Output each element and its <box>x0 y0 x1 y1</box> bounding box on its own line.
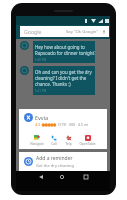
button[interactable]: Call <box>50 135 58 146</box>
staticText: $$$ <box>69 122 76 127</box>
other: Voice search <box>102 30 106 34</box>
staticText: 5:40 PM <box>35 58 47 62</box>
staticText: Google <box>24 28 42 35</box>
button[interactable]: Home <box>60 175 64 179</box>
staticText: OpenTable <box>79 142 96 146</box>
button[interactable]: Google <box>20 26 109 37</box>
button[interactable]: OpenTable <box>78 135 97 146</box>
button[interactable]: Recent apps <box>84 175 88 179</box>
staticText: chance. Thanks :) <box>35 81 71 87</box>
staticText: Add a reminder <box>36 155 73 162</box>
button[interactable]: Add a reminder <box>19 152 107 171</box>
staticText: Call <box>51 142 57 146</box>
staticText: Hey how about going to <box>35 44 85 50</box>
staticText: (319) <box>58 122 67 127</box>
button[interactable]: Yelp <box>64 135 73 146</box>
staticText: 4.3 <box>35 122 41 127</box>
button[interactable]: Back <box>39 175 43 179</box>
staticText: cleaning? I didn't get the <box>35 75 87 81</box>
staticText: 4.5 mi <box>78 122 89 127</box>
staticText: Yelp <box>65 142 72 146</box>
staticText: Get the dry cleaning <box>36 163 74 168</box>
staticText: Oh and can you get the dry <box>35 69 92 75</box>
staticText: 5:41 PM <box>35 89 47 93</box>
button[interactable]: Evvia <box>19 109 107 149</box>
staticText: Say "Ok Google" <box>66 29 98 35</box>
staticText: Navigate <box>30 142 44 146</box>
staticText: Rapsoado for dinner tonight? <box>35 50 95 56</box>
staticText: Evvia <box>35 114 49 121</box>
button[interactable]: Navigate <box>29 135 45 146</box>
